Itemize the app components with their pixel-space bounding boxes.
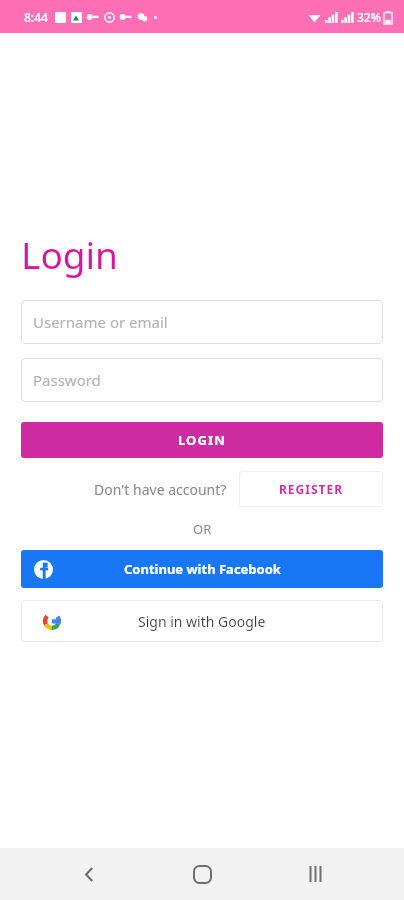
button[interactable]: Recent apps — [291, 850, 339, 898]
staticText: 8:44 — [24, 9, 48, 25]
staticText: Continue with Facebook — [124, 560, 281, 578]
button[interactable]: Username or email — [21, 300, 383, 344]
button[interactable]: REGISTER — [239, 471, 383, 507]
staticText: Password — [33, 370, 101, 390]
staticText: Sign in with Google — [138, 612, 266, 631]
staticText: Don't have account? — [94, 480, 227, 499]
button[interactable]: Continue with Facebook — [21, 550, 383, 588]
staticText: REGISTER — [279, 481, 344, 497]
staticText: 32% — [357, 9, 381, 25]
staticText: OR — [193, 520, 212, 538]
button[interactable]: Home — [178, 850, 226, 898]
staticText: LOGIN — [178, 431, 226, 449]
staticText: Username or email — [33, 312, 168, 332]
button[interactable]: LOGIN — [21, 422, 383, 458]
button[interactable]: Password — [21, 358, 383, 402]
button[interactable]: Back — [65, 850, 113, 898]
button[interactable]: Sign in with Google — [21, 600, 383, 642]
staticText: Login — [21, 229, 118, 279]
